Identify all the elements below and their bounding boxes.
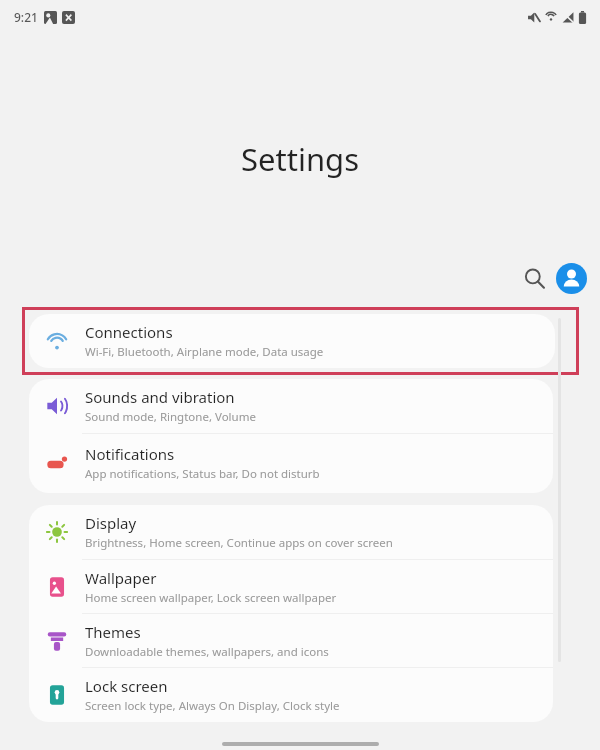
button[interactable]: Wallpaper	[29, 560, 553, 613]
staticText: App notifications, Status bar, Do not di…	[85, 466, 320, 482]
staticText: Wi-Fi, Bluetooth, Airplane mode, Data us…	[85, 344, 324, 360]
button[interactable]: Themes	[29, 614, 553, 667]
staticText: Downloadable themes, wallpapers, and ico…	[85, 644, 329, 660]
staticText: Display	[85, 513, 137, 533]
staticText: Settings	[241, 138, 359, 180]
staticText: Themes	[85, 622, 141, 642]
staticText: Wallpaper	[85, 568, 157, 588]
staticText: Notifications	[85, 444, 175, 464]
button[interactable]: Account	[553, 260, 589, 296]
staticText: Screen lock type, Always On Display, Clo…	[85, 698, 340, 714]
staticText: 9:21	[14, 9, 38, 25]
button[interactable]: Notifications	[29, 434, 553, 492]
staticText: Home screen wallpaper, Lock screen wallp…	[85, 590, 337, 606]
staticText: Brightness, Home screen, Continue apps o…	[85, 535, 393, 551]
staticText: Sounds and vibration	[85, 387, 235, 407]
staticText: Lock screen	[85, 676, 168, 696]
button[interactable]: Display	[29, 505, 553, 559]
staticText: Connections	[85, 322, 173, 342]
button[interactable]: Lock screen	[29, 668, 553, 722]
button[interactable]: Sounds and vibration	[29, 379, 553, 433]
button[interactable]: Search	[515, 259, 553, 297]
staticText: Sound mode, Ringtone, Volume	[85, 409, 256, 425]
button[interactable]: Connections	[29, 314, 555, 368]
